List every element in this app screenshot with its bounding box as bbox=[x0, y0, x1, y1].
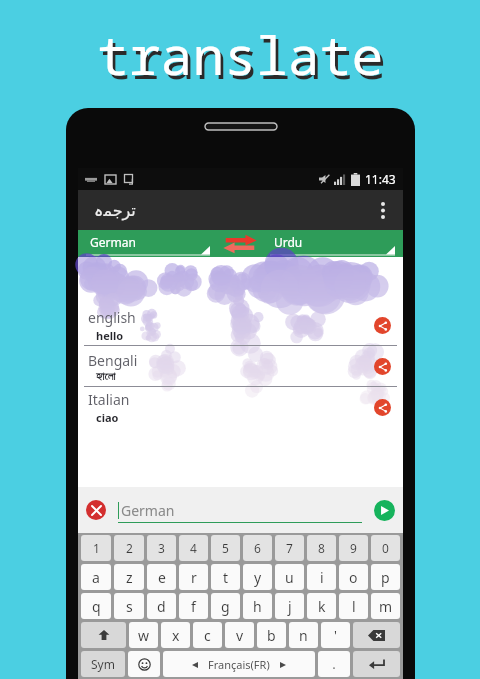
staticText: 6 bbox=[254, 540, 261, 556]
button[interactable]: Clear bbox=[86, 500, 106, 520]
staticText: হ্যালো bbox=[96, 371, 116, 382]
staticText: j bbox=[288, 597, 292, 616]
button[interactable]: 0 bbox=[371, 535, 400, 561]
button[interactable]: f bbox=[179, 593, 208, 619]
staticText: n bbox=[299, 626, 308, 645]
staticText: ciao bbox=[96, 410, 119, 425]
staticText: 3 bbox=[158, 540, 165, 556]
button[interactable]: 6 bbox=[243, 535, 272, 561]
button[interactable]: u bbox=[275, 564, 304, 590]
button[interactable]: 8 bbox=[307, 535, 336, 561]
staticText: h bbox=[253, 597, 262, 616]
staticText: German bbox=[121, 501, 175, 520]
staticText: i bbox=[320, 568, 324, 587]
staticText: k bbox=[318, 597, 326, 616]
button[interactable]: 9 bbox=[339, 535, 368, 561]
button[interactable]: 1 bbox=[81, 535, 111, 561]
staticText: y bbox=[254, 568, 262, 587]
button[interactable]: v bbox=[225, 622, 254, 648]
button[interactable]: 4 bbox=[179, 535, 208, 561]
button[interactable]: Backspace bbox=[353, 622, 400, 648]
button[interactable]: english bbox=[78, 305, 403, 345]
staticText: Sym bbox=[91, 656, 115, 672]
staticText: l bbox=[352, 597, 356, 616]
button[interactable]: 5 bbox=[211, 535, 240, 561]
button[interactable]: q bbox=[81, 593, 111, 619]
staticText: 9 bbox=[350, 540, 357, 556]
staticText: u bbox=[285, 568, 294, 587]
button[interactable]: j bbox=[275, 593, 304, 619]
button[interactable]: Translate bbox=[374, 500, 395, 521]
button[interactable]: Enter bbox=[353, 651, 400, 677]
button[interactable]: b bbox=[257, 622, 286, 648]
staticText: d bbox=[157, 597, 166, 616]
staticText: . bbox=[332, 655, 336, 673]
button[interactable]: d bbox=[147, 593, 176, 619]
button[interactable]: Sym bbox=[81, 651, 125, 677]
button[interactable]: r bbox=[179, 564, 208, 590]
staticText: a bbox=[92, 568, 100, 587]
staticText: b bbox=[267, 626, 276, 645]
button[interactable]: Urdu bbox=[270, 230, 395, 257]
staticText: 7 bbox=[286, 540, 293, 556]
staticText: translate bbox=[97, 18, 384, 90]
button[interactable]: Shift bbox=[81, 622, 126, 648]
button[interactable]: German bbox=[86, 230, 210, 257]
staticText: Français(FR) bbox=[208, 657, 270, 672]
staticText: Urdu bbox=[274, 234, 303, 250]
staticText: hello bbox=[96, 328, 124, 343]
staticText: German bbox=[90, 234, 136, 250]
staticText: 4 bbox=[190, 540, 197, 556]
staticText: g bbox=[221, 597, 230, 616]
button[interactable]: p bbox=[371, 564, 400, 590]
staticText: m bbox=[379, 597, 393, 616]
staticText: translate bbox=[100, 22, 387, 94]
button[interactable]: e bbox=[147, 564, 176, 590]
button[interactable]: 2 bbox=[114, 535, 144, 561]
button[interactable]: 3 bbox=[147, 535, 176, 561]
button[interactable]: Emoji bbox=[128, 651, 160, 677]
button[interactable]: y bbox=[243, 564, 272, 590]
staticText: 2 bbox=[126, 540, 133, 556]
staticText: v bbox=[236, 626, 244, 645]
button[interactable]: o bbox=[339, 564, 368, 590]
staticText: 5 bbox=[222, 540, 229, 556]
button[interactable]: a bbox=[81, 564, 111, 590]
staticText: 0 bbox=[382, 540, 389, 556]
button[interactable]: n bbox=[289, 622, 318, 648]
button[interactable]: Space bbox=[163, 651, 315, 677]
staticText: z bbox=[126, 568, 133, 587]
button[interactable]: k bbox=[307, 593, 336, 619]
button[interactable]: Share bbox=[374, 317, 391, 334]
button[interactable]: 7 bbox=[275, 535, 304, 561]
staticText: q bbox=[92, 597, 101, 616]
staticText: Bengali bbox=[88, 351, 138, 370]
button[interactable]: ' bbox=[321, 622, 350, 648]
staticText: f bbox=[191, 597, 196, 616]
button[interactable]: Bengali bbox=[78, 346, 403, 386]
button[interactable]: w bbox=[129, 622, 158, 648]
button[interactable]: i bbox=[307, 564, 336, 590]
button[interactable]: Share bbox=[374, 399, 391, 416]
staticText: r bbox=[191, 568, 197, 587]
staticText: 8 bbox=[318, 540, 325, 556]
button[interactable]: t bbox=[211, 564, 240, 590]
staticText: p bbox=[381, 568, 390, 587]
button[interactable]: g bbox=[211, 593, 240, 619]
button[interactable]: Swap languages bbox=[214, 230, 266, 257]
button[interactable]: z bbox=[114, 564, 144, 590]
staticText: ' bbox=[334, 626, 337, 644]
button[interactable]: Share bbox=[374, 358, 391, 375]
staticText: Italian bbox=[88, 390, 130, 409]
button[interactable]: m bbox=[371, 593, 400, 619]
button[interactable]: c bbox=[193, 622, 222, 648]
button[interactable]: s bbox=[114, 593, 144, 619]
button[interactable]: More options bbox=[363, 190, 403, 230]
button[interactable]: h bbox=[243, 593, 272, 619]
button[interactable]: x bbox=[161, 622, 190, 648]
button[interactable]: l bbox=[339, 593, 368, 619]
button[interactable]: . bbox=[318, 651, 350, 677]
staticText: x bbox=[172, 626, 180, 645]
staticText: english bbox=[88, 308, 136, 327]
button[interactable]: Italian bbox=[78, 387, 403, 427]
